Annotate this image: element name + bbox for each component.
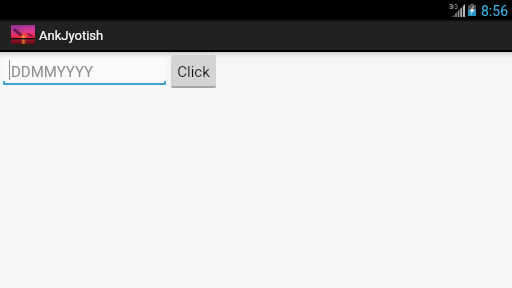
button[interactable]: Click [171, 55, 216, 88]
staticText: 8:56 [481, 3, 508, 19]
staticText: DDMMYYYY [11, 63, 94, 81]
button[interactable]: AnkJyotish [0, 19, 115, 50]
button[interactable]: Date input DDMMYYYY [3, 55, 166, 90]
staticText: 3G [449, 2, 459, 11]
staticText: Click [177, 63, 210, 81]
staticText: AnkJyotish [39, 28, 104, 43]
